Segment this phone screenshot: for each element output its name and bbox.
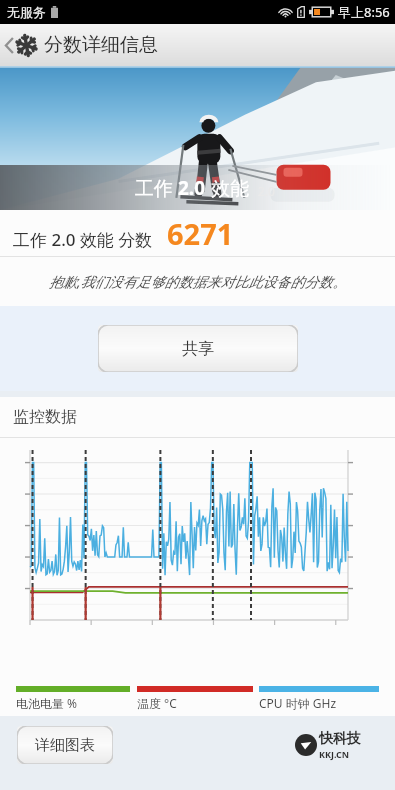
staticText: 分数详细信息: [44, 33, 158, 57]
staticText: 共享: [182, 339, 214, 359]
staticText: 监控数据: [13, 407, 77, 427]
staticText: 2.0: [178, 175, 206, 201]
staticText: 无服务: [7, 4, 46, 20]
button[interactable]: 详细图表: [17, 726, 113, 764]
staticText: CPU 时钟 GHz: [259, 695, 337, 711]
staticText: 工作: [135, 175, 178, 201]
staticText: 6271: [167, 214, 234, 253]
staticText: KKJ.CN: [319, 748, 350, 760]
staticText: 工作 2.0 效能 分数: [13, 228, 153, 251]
staticText: 详细图表: [35, 736, 95, 755]
button[interactable]: Back: [0, 26, 42, 65]
staticText: 温度 °C: [137, 695, 177, 711]
staticText: 效能: [206, 175, 249, 201]
staticText: 快科技: [319, 730, 361, 748]
staticText: 电池电量 %: [16, 695, 78, 711]
button[interactable]: 共享: [98, 325, 298, 372]
staticText: 抱歉,我们没有足够的数据来对比此设备的分数。: [49, 272, 347, 291]
staticText: 早上8:56: [338, 3, 390, 21]
